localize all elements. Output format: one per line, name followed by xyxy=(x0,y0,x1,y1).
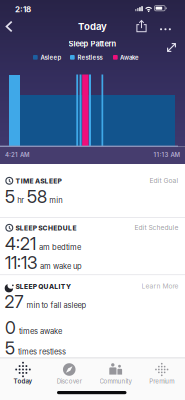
staticText: Asleep xyxy=(40,54,61,61)
staticText: Today xyxy=(13,377,32,385)
staticText: Edit Goal xyxy=(149,176,178,185)
staticText: Restless xyxy=(77,54,102,61)
staticText: 5 xyxy=(5,337,15,359)
staticText: Today xyxy=(78,21,107,32)
button[interactable]: Community xyxy=(92,358,138,395)
button[interactable]: Premium xyxy=(139,358,185,395)
staticText: times restless xyxy=(18,347,66,356)
button[interactable]: Expand chart xyxy=(164,40,178,54)
button[interactable]: Discover xyxy=(46,358,92,395)
staticText: Edit Schedule xyxy=(134,223,178,232)
staticText: 11:13 AM xyxy=(153,151,180,159)
staticText: hr xyxy=(17,196,24,205)
staticText: SLEEP QUALITY xyxy=(15,282,71,291)
button[interactable]: Learn More xyxy=(141,282,178,290)
staticText: 58 xyxy=(27,186,47,207)
staticText: 0 xyxy=(5,317,16,338)
button[interactable]: Today xyxy=(0,358,46,395)
staticText: times awake xyxy=(19,327,62,336)
button[interactable]: Edit Goal xyxy=(149,176,178,185)
staticText: 4:21 AM xyxy=(5,151,30,159)
staticText: 2:18 xyxy=(15,4,31,14)
staticText: TIME ASLEEP xyxy=(15,177,61,185)
staticText: Awake xyxy=(120,54,139,61)
staticText: 27 xyxy=(4,291,23,312)
button[interactable]: Edit Schedule xyxy=(134,223,178,232)
staticText: SLEEP SCHEDULE xyxy=(15,224,76,232)
staticText: min to fall asleep xyxy=(26,301,86,310)
staticText: Sleep Pattern xyxy=(68,39,116,48)
staticText: Community xyxy=(99,377,131,385)
staticText: Learn More xyxy=(141,282,178,290)
staticText: am bedtime xyxy=(39,243,81,252)
button[interactable]: Share xyxy=(134,18,149,34)
staticText: Discover xyxy=(57,377,82,385)
staticText: am wake up xyxy=(40,262,82,271)
staticText: 11:13 xyxy=(5,252,37,273)
button[interactable]: Back xyxy=(2,18,15,35)
staticText: min xyxy=(49,196,62,205)
staticText: 5 xyxy=(5,186,15,207)
button[interactable]: More xyxy=(156,24,175,34)
staticText: Premium xyxy=(149,377,174,385)
staticText: 4:21 xyxy=(5,233,36,254)
